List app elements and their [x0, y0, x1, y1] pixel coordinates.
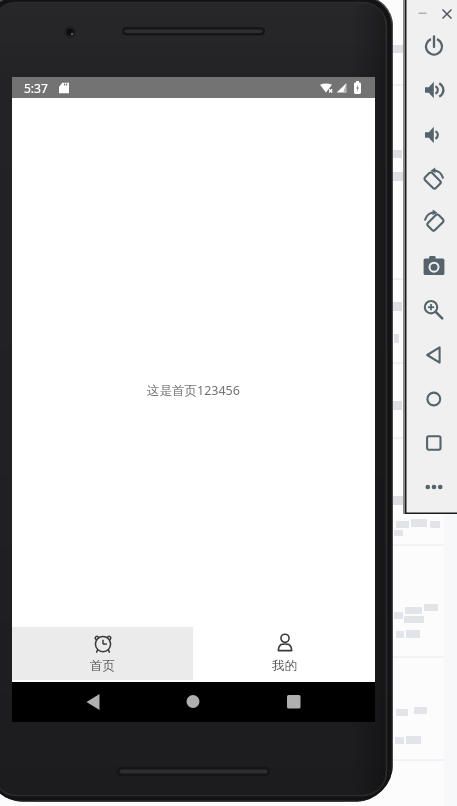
button[interactable]: Minimize — [412, 3, 433, 24]
button[interactable]: Screenshot — [417, 249, 451, 283]
button[interactable]: 首页 — [12, 627, 193, 680]
button[interactable]: More — [417, 470, 451, 504]
staticText: 5:37 — [24, 80, 48, 96]
button[interactable]: Rotate left — [417, 162, 451, 196]
button[interactable]: Volume down — [417, 118, 451, 152]
button[interactable]: Zoom — [417, 291, 451, 325]
button[interactable]: 我的 — [193, 627, 375, 680]
button[interactable]: Home — [169, 682, 217, 722]
staticText: 这是首页123456 — [147, 382, 240, 399]
button[interactable]: Recent apps — [270, 682, 318, 722]
button[interactable]: Close — [436, 3, 457, 25]
button[interactable]: Overview — [417, 426, 451, 460]
button[interactable]: Rotate right — [417, 204, 451, 238]
button[interactable]: Power — [417, 29, 451, 63]
button[interactable]: Back — [417, 338, 451, 372]
button[interactable]: Home — [417, 382, 451, 416]
staticText: 我的 — [272, 658, 297, 674]
button[interactable]: Back — [81, 682, 129, 722]
staticText: 首页 — [90, 658, 115, 674]
button[interactable]: Volume up — [417, 73, 451, 107]
